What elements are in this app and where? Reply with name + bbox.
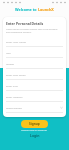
staticText: Mobile	[6, 62, 15, 65]
staticText: Enter Personal Details	[6, 21, 44, 26]
staticText: Enter your email	[6, 73, 26, 76]
button[interactable]: Enter Address	[6, 91, 63, 101]
button[interactable]: Enter E-ID	[6, 80, 63, 90]
staticText: Login	[30, 133, 40, 138]
button[interactable]: Enter Your Name	[6, 36, 63, 46]
staticText: Already have an account?	[21, 129, 48, 132]
button[interactable]: Select gender	[6, 102, 63, 112]
staticText: Enter Your Name	[6, 40, 27, 43]
staticText: Age	[6, 51, 11, 54]
button[interactable]: Enter your email	[6, 69, 63, 79]
button[interactable]: Login	[30, 133, 40, 138]
staticText: Enter Address	[6, 95, 23, 98]
staticText: LaunchX	[38, 7, 54, 12]
staticText: Select gender	[6, 106, 23, 109]
staticText: Signup	[29, 122, 40, 126]
staticText: Lorem ipsum is simply dummy text of the …	[6, 28, 58, 34]
button[interactable]: Mobile	[6, 58, 63, 68]
staticText: Welcome to	[15, 7, 38, 12]
staticText: Enter E-ID	[6, 84, 18, 87]
button[interactable]: Signup	[21, 120, 48, 128]
